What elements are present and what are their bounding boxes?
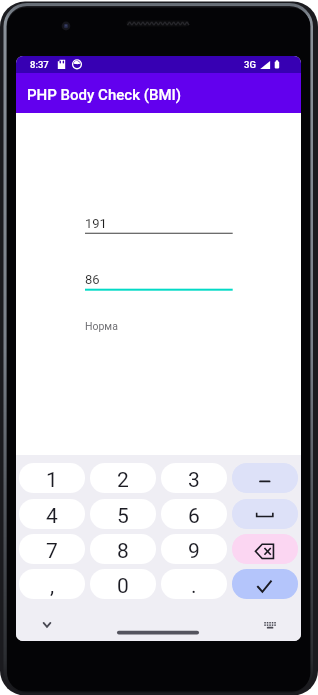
button[interactable]: Hide keyboard	[37, 615, 57, 635]
button[interactable]: Space	[232, 499, 298, 529]
button[interactable]: 9	[161, 534, 227, 564]
button[interactable]: 7	[19, 534, 85, 564]
button[interactable]: 191	[85, 209, 233, 239]
button[interactable]: PHP Body Check (BMI)	[16, 73, 301, 113]
staticText: 5	[117, 504, 129, 529]
staticText: ,	[50, 574, 55, 599]
button[interactable]: 3	[161, 463, 227, 493]
staticText: 0	[117, 574, 129, 599]
staticText: 191	[85, 216, 107, 231]
button[interactable]: 8	[90, 534, 156, 564]
staticText: Норма	[85, 320, 118, 332]
button[interactable]: 86	[85, 265, 233, 295]
staticText: 4	[46, 504, 58, 529]
staticText: 2	[117, 468, 129, 493]
staticText: 6	[188, 504, 200, 529]
button[interactable]: 5	[90, 499, 156, 529]
button[interactable]: ,	[19, 569, 85, 599]
button[interactable]: .	[161, 569, 227, 599]
staticText: 86	[85, 272, 100, 287]
staticText: 8	[117, 539, 129, 564]
button[interactable]: 0	[90, 569, 156, 599]
staticText: PHP Body Check (BMI)	[27, 86, 182, 104]
button[interactable]: Enter	[232, 569, 298, 599]
staticText: 3	[188, 468, 200, 493]
button[interactable]: 6	[161, 499, 227, 529]
button[interactable]: Minus	[232, 463, 298, 493]
staticText: 7	[46, 539, 58, 564]
button[interactable]: 1	[19, 463, 85, 493]
staticText: 8:37	[30, 59, 49, 70]
button[interactable]: Backspace	[232, 534, 298, 564]
button[interactable]: 2	[90, 463, 156, 493]
button[interactable]: 4	[19, 499, 85, 529]
button[interactable]: Switch keyboard	[258, 615, 282, 635]
staticText: 1	[46, 468, 58, 493]
staticText: .	[191, 574, 197, 599]
staticText: 3G	[244, 59, 256, 70]
staticText: 9	[188, 539, 200, 564]
